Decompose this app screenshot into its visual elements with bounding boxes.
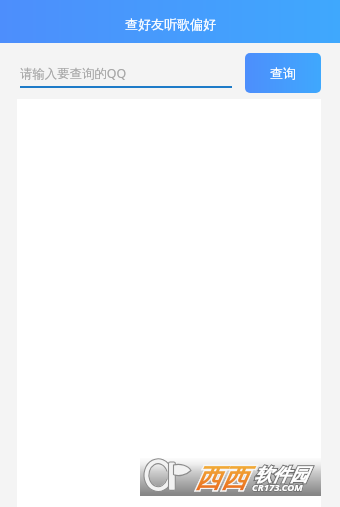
staticText: 查好友听歌偏好: [125, 16, 216, 32]
other: 西西软件园 CR173.COM: [140, 458, 321, 496]
staticText: CR173.COM: [252, 481, 303, 494]
staticText: CR173.COM: [252, 481, 303, 494]
button[interactable]: 请输入要查询的QQ: [20, 60, 232, 88]
staticText: 西西: [195, 462, 247, 495]
staticText: 西西: [195, 462, 247, 495]
staticText: 请输入要查询的QQ: [20, 65, 127, 82]
staticText: 查询: [270, 65, 296, 81]
button[interactable]: 查询: [245, 53, 321, 93]
staticText: 软件园: [254, 464, 308, 487]
staticText: 软件园: [254, 464, 308, 487]
